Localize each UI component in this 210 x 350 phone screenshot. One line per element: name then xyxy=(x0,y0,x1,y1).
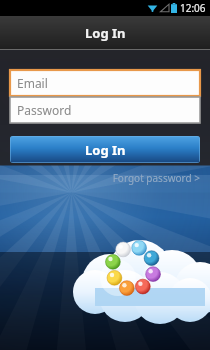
staticText: Password xyxy=(17,102,72,118)
staticText: Forgot password > xyxy=(112,171,200,185)
button[interactable]: Log In xyxy=(10,136,200,163)
button[interactable]: Password xyxy=(10,97,200,123)
staticText: Email xyxy=(17,75,48,91)
button[interactable]: Forgot password > xyxy=(10,171,200,185)
staticText: Log In xyxy=(85,141,126,159)
button[interactable]: Email xyxy=(10,70,200,96)
staticText: 12:06 xyxy=(180,1,206,15)
staticText: Log In xyxy=(85,24,126,42)
